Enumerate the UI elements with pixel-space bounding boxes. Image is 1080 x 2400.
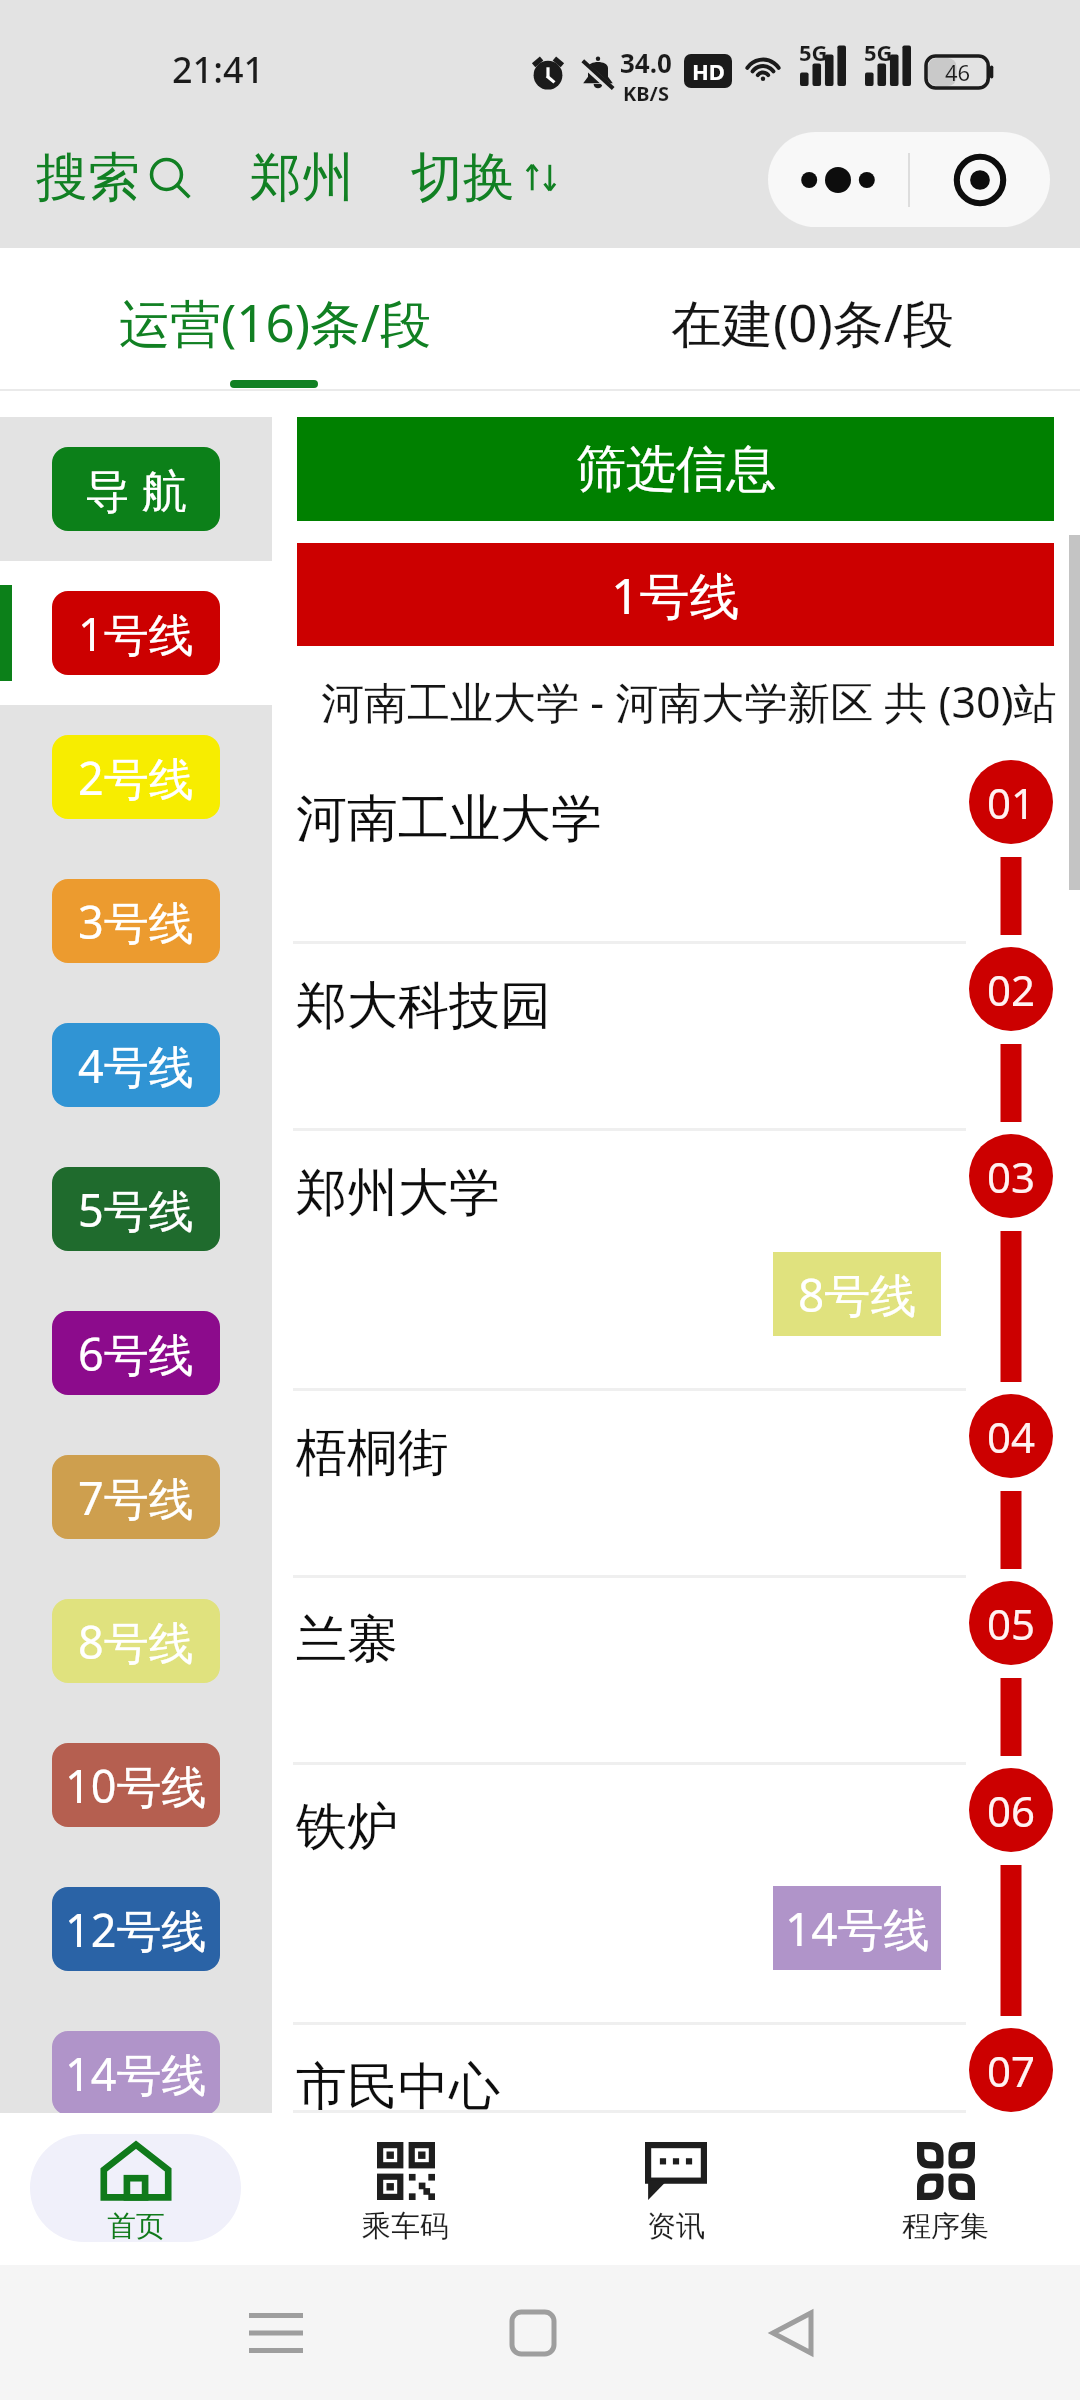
button[interactable]: 市民中心 (272, 2025, 1080, 2113)
button[interactable]: 1号线 (0, 561, 272, 705)
staticText: 切换 (411, 145, 515, 211)
button[interactable]: 乘车码 (270, 2113, 540, 2265)
button[interactable]: 2号线 (0, 705, 272, 849)
button[interactable]: 切换 (411, 145, 563, 211)
staticText: 5G (799, 37, 828, 67)
staticText: 03 (987, 1148, 1036, 1205)
staticText: 在建(0)条/段 (671, 287, 954, 357)
staticText: 6号线 (78, 1323, 194, 1384)
staticText: 07 (987, 2042, 1036, 2099)
button[interactable]: 10号线 (0, 1713, 272, 1857)
button[interactable]: 筛选信息 (297, 417, 1054, 521)
button[interactable]: Close mini program (910, 132, 1050, 227)
staticText: 导 航 (85, 459, 187, 520)
button[interactable]: 程序集 (810, 2113, 1080, 2265)
staticText: 资讯 (647, 2208, 705, 2242)
staticText: 34.0 (620, 45, 672, 80)
staticText: 01 (987, 774, 1036, 831)
staticText: 1号线 (611, 561, 740, 629)
button[interactable]: 14号线 (773, 1886, 941, 1970)
staticText: 8号线 (78, 1611, 194, 1672)
button[interactable]: Recent apps (220, 2280, 332, 2385)
staticText: 兰寨 (296, 1608, 398, 1672)
button[interactable]: 河南工业大学 (272, 757, 1080, 944)
button[interactable]: Home (477, 2280, 589, 2385)
staticText: 筛选信息 (576, 438, 776, 501)
button[interactable]: 4号线 (0, 993, 272, 1137)
staticText: 7号线 (78, 1467, 194, 1528)
button[interactable]: 8号线 (773, 1252, 941, 1336)
staticText: 4号线 (78, 1035, 194, 1096)
staticText: 06 (987, 1782, 1036, 1839)
staticText: 1号线 (78, 603, 194, 664)
staticText: 铁炉 (296, 1795, 398, 1859)
staticText: 河南工业大学 - 河南大学新区 共 (30)站 (321, 672, 1057, 731)
staticText: 14号线 (785, 1897, 930, 1960)
staticText: 5号线 (78, 1179, 194, 1240)
staticText: 乘车码 (362, 2208, 449, 2242)
button[interactable]: 3号线 (0, 849, 272, 993)
button[interactable]: 郑州 (250, 145, 354, 211)
staticText: 梧桐街 (296, 1421, 449, 1485)
staticText: 3号线 (78, 891, 194, 952)
staticText: 46 (945, 57, 971, 87)
button[interactable]: 郑大科技园 (272, 944, 1080, 1131)
button[interactable]: 14号线 (0, 2001, 272, 2113)
button[interactable]: 6号线 (0, 1281, 272, 1425)
button[interactable]: 12号线 (0, 1857, 272, 2001)
staticText: HD (692, 56, 725, 86)
button[interactable]: 首页 (0, 2113, 270, 2265)
staticText: 程序集 (902, 2208, 989, 2242)
button[interactable]: 资讯 (540, 2113, 810, 2265)
button[interactable]: 兰寨 (272, 1578, 1080, 1765)
button[interactable]: Back (736, 2280, 848, 2385)
staticText: 8号线 (798, 1263, 917, 1326)
button[interactable]: 导 航 (0, 417, 272, 561)
staticText: 搜索 (36, 145, 140, 211)
staticText: 郑大科技园 (296, 974, 551, 1038)
staticText: 市民中心 (296, 2055, 500, 2113)
staticText: 02 (987, 961, 1036, 1018)
staticText: 首页 (107, 2208, 165, 2242)
staticText: 2号线 (78, 747, 194, 808)
button[interactable]: 铁炉 (272, 1765, 1080, 2025)
staticText: 21:41 (172, 45, 265, 94)
button[interactable]: 搜索 (36, 145, 192, 211)
staticText: 05 (987, 1595, 1036, 1652)
button[interactable]: 8号线 (0, 1569, 272, 1713)
button[interactable]: 1号线 (297, 543, 1054, 646)
button[interactable]: 郑州大学 (272, 1131, 1080, 1391)
staticText: 运营(16)条/段 (119, 287, 431, 357)
button[interactable]: 梧桐街 (272, 1391, 1080, 1578)
staticText: 14号线 (65, 2043, 207, 2104)
button[interactable]: 7号线 (0, 1425, 272, 1569)
staticText: 郑州大学 (296, 1161, 500, 1225)
staticText: 河南工业大学 (296, 787, 602, 851)
button[interactable]: 在建(0)条/段 (540, 248, 1080, 391)
button[interactable]: 5号线 (0, 1137, 272, 1281)
button[interactable]: 运营(16)条/段 (0, 248, 540, 391)
staticText: 5G (864, 37, 893, 67)
staticText: KB/S (623, 80, 669, 107)
staticText: 12号线 (65, 1899, 207, 1960)
staticText: 04 (987, 1408, 1036, 1465)
button[interactable]: More options (768, 132, 908, 227)
staticText: 10号线 (65, 1755, 207, 1816)
staticText: 郑州 (250, 145, 354, 211)
